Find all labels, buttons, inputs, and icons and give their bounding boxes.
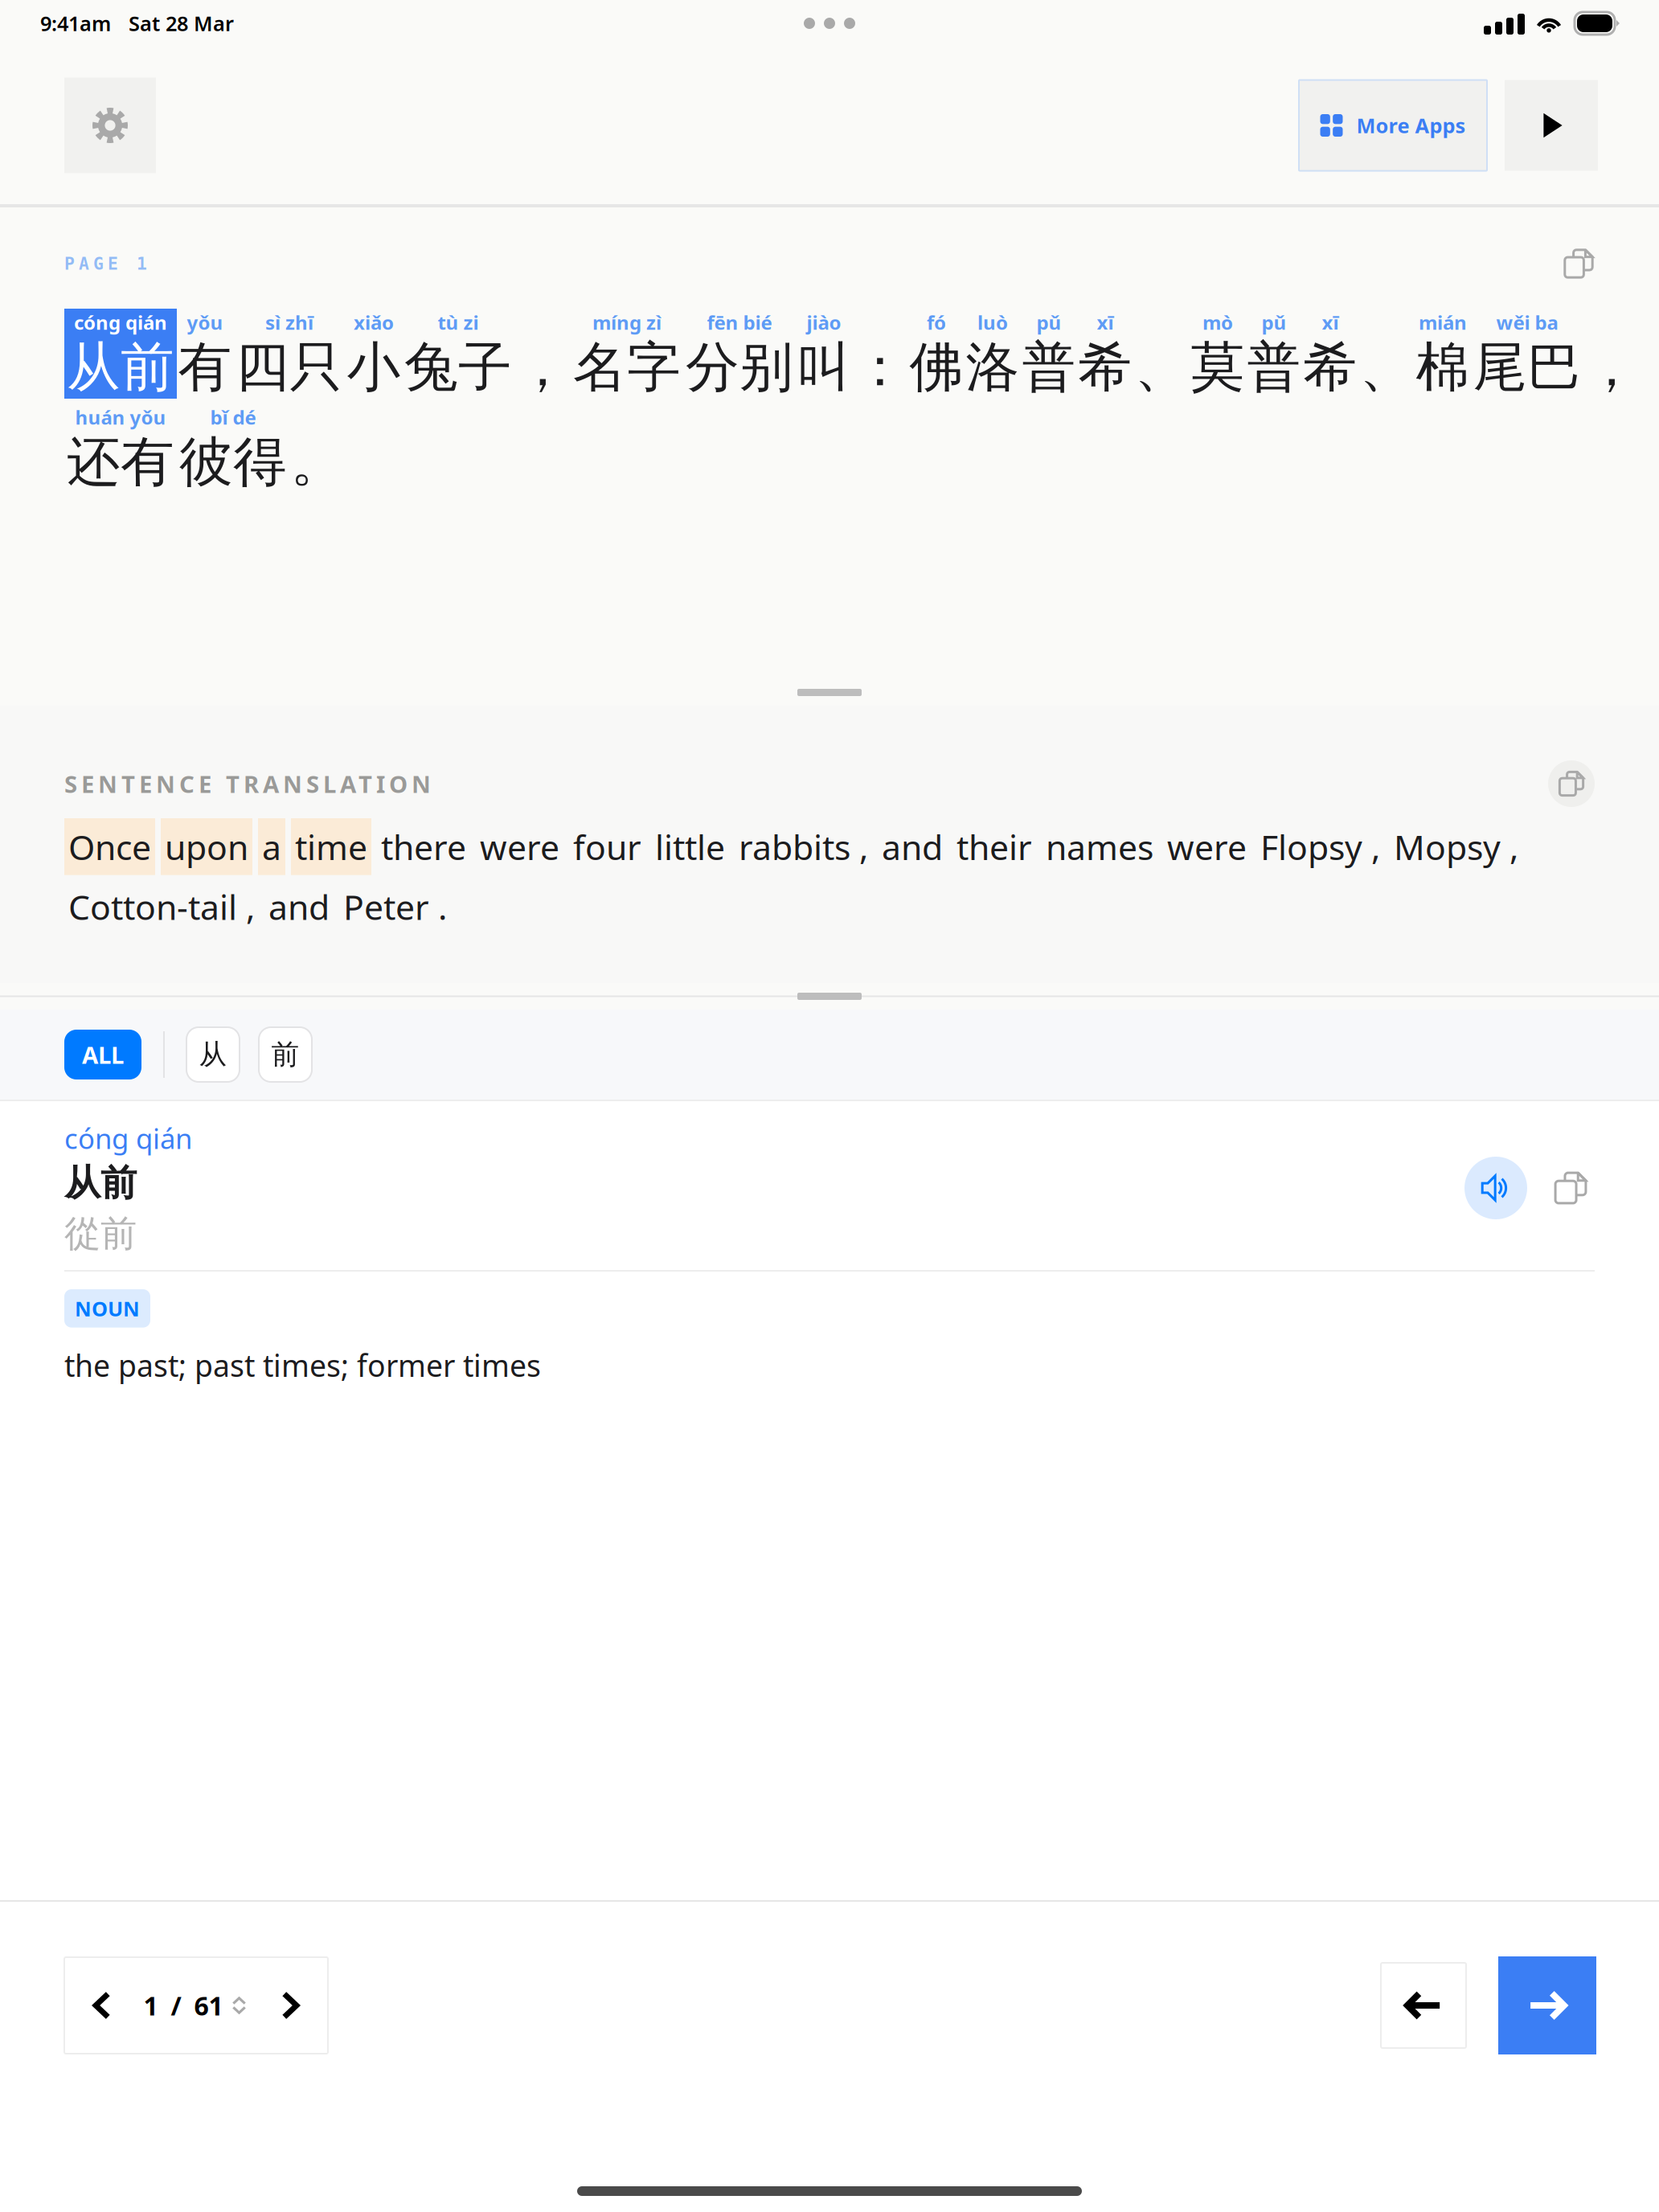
- staticText: Mopsy ,: [1394, 824, 1518, 869]
- button[interactable]: Play: [1505, 80, 1598, 171]
- staticText: yǒu: [187, 310, 223, 335]
- staticText: 9:41am: [40, 10, 111, 37]
- staticText: míng zì: [592, 310, 662, 335]
- staticText: four: [573, 824, 641, 869]
- staticText: 從前: [64, 1211, 137, 1256]
- staticText: 小: [347, 334, 401, 400]
- staticText: 叫: [797, 334, 851, 400]
- button[interactable]: Copy word: [1546, 1157, 1595, 1219]
- staticText: 棉: [1416, 334, 1470, 400]
- staticText: 还有: [67, 429, 174, 495]
- staticText: the past; past times; former times: [64, 1345, 541, 1385]
- button[interactable]: Previous page: [73, 1958, 132, 2053]
- button[interactable]: Forward: [1498, 1956, 1596, 2054]
- staticText: SENTENCE TRANSLATION: [64, 768, 431, 799]
- staticText: 普: [1247, 334, 1301, 400]
- staticText: Sat 28 Mar: [129, 10, 234, 37]
- staticText: time: [295, 824, 367, 869]
- staticText: their: [956, 824, 1032, 869]
- staticText: cóng qián: [74, 310, 167, 335]
- staticText: and: [882, 824, 943, 869]
- staticText: wěi ba: [1496, 310, 1558, 335]
- button[interactable]: Next page: [260, 1958, 320, 2053]
- button[interactable]: ALL: [64, 1030, 141, 1079]
- staticText: 彼得: [179, 429, 287, 495]
- button[interactable]: 从: [186, 1027, 240, 1082]
- staticText: 有: [178, 334, 232, 400]
- staticText: sì zhī: [265, 310, 313, 335]
- staticText: 1 / 61: [143, 1988, 223, 2023]
- button[interactable]: Pronounce: [1464, 1157, 1527, 1219]
- staticText: were: [480, 824, 559, 869]
- staticText: 从: [199, 1037, 227, 1072]
- staticText: names: [1046, 824, 1153, 869]
- staticText: xī: [1322, 310, 1339, 335]
- staticText: pǔ: [1262, 310, 1286, 335]
- staticText: More Apps: [1356, 112, 1466, 139]
- staticText: NOUN: [75, 1295, 140, 1322]
- staticText: xī: [1097, 310, 1114, 335]
- staticText: 兔子: [404, 334, 512, 400]
- staticText: cóng qián: [64, 1120, 192, 1157]
- staticText: 、: [1135, 334, 1188, 400]
- staticText: ，: [516, 334, 569, 400]
- staticText: were: [1167, 824, 1247, 869]
- staticText: 从前: [64, 1161, 137, 1206]
- staticText: tù zi: [438, 310, 479, 335]
- button[interactable]: Copy sentence: [1563, 248, 1595, 280]
- staticText: 名字: [573, 334, 681, 400]
- staticText: 分别: [686, 334, 793, 400]
- staticText: little: [655, 824, 725, 869]
- staticText: Once: [68, 824, 151, 869]
- staticText: 希: [1078, 334, 1132, 400]
- staticText: 前: [271, 1037, 299, 1072]
- staticText: and: [268, 884, 330, 929]
- staticText: xiǎo: [354, 310, 394, 335]
- staticText: 、: [1360, 334, 1413, 400]
- staticText: 。: [291, 429, 344, 495]
- staticText: bǐ dé: [210, 404, 256, 430]
- staticText: mián: [1419, 310, 1467, 335]
- staticText: Cotton-tail ,: [68, 884, 255, 929]
- staticText: fēn bié: [707, 310, 772, 335]
- staticText: 希: [1303, 334, 1357, 400]
- staticText: upon: [165, 824, 248, 869]
- staticText: 莫: [1191, 334, 1245, 400]
- staticText: ，: [1585, 334, 1639, 400]
- staticText: 佛: [909, 334, 963, 400]
- staticText: ：: [853, 334, 907, 400]
- staticText: a: [262, 824, 281, 869]
- staticText: rabbits ,: [739, 824, 868, 869]
- staticText: Peter .: [343, 884, 447, 929]
- button[interactable]: Settings: [64, 78, 156, 173]
- staticText: 四只: [236, 334, 343, 400]
- staticText: jiào: [807, 310, 841, 335]
- staticText: pǔ: [1036, 310, 1061, 335]
- staticText: Flopsy ,: [1260, 824, 1380, 869]
- staticText: there: [381, 824, 466, 869]
- staticText: 普: [1022, 334, 1076, 400]
- button[interactable]: More Apps: [1299, 80, 1487, 171]
- staticText: luò: [977, 310, 1008, 335]
- staticText: 洛: [966, 334, 1020, 400]
- button[interactable]: 前: [259, 1027, 312, 1082]
- button[interactable]: Copy translation: [1548, 760, 1595, 807]
- staticText: ALL: [82, 1039, 124, 1070]
- staticText: mò: [1202, 310, 1233, 335]
- staticText: 尾巴: [1473, 334, 1581, 400]
- staticText: huán yǒu: [75, 404, 166, 430]
- staticText: fó: [927, 310, 946, 335]
- staticText: 从前: [67, 334, 174, 400]
- button[interactable]: Back: [1381, 1963, 1466, 2048]
- staticText: PAGE 1: [64, 254, 147, 273]
